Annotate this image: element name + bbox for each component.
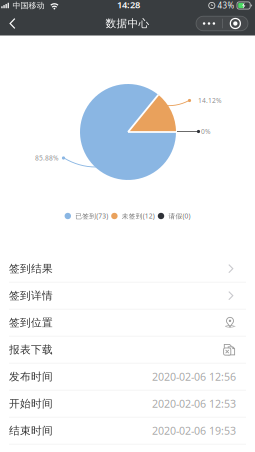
button[interactable]: 发布时间 [0, 363, 255, 390]
staticText: 2020-02-06 19:53 [152, 424, 236, 438]
staticText: 已签到(73) [75, 212, 108, 220]
staticText: 43% [218, 0, 235, 11]
button[interactable]: 开始时间 [0, 390, 255, 417]
staticText: 结束时间 [9, 424, 53, 437]
staticText: 14.12% [198, 96, 222, 105]
staticText: 签到位置 [9, 316, 53, 329]
staticText: 14:28 [117, 0, 140, 11]
staticText: 2020-02-06 12:53 [152, 397, 236, 411]
button[interactable]: 报表下载 [0, 336, 255, 363]
button[interactable]: 结束时间 [0, 417, 255, 444]
staticText: 报表下载 [9, 343, 53, 356]
button[interactable]: 签到结果 [0, 255, 255, 282]
staticText: 中国移动 [12, 1, 44, 10]
staticText: 发布时间 [9, 370, 53, 383]
button[interactable]: 签到位置 [0, 309, 255, 336]
staticText: 签到结果 [9, 262, 53, 275]
staticText: 数据中心 [105, 17, 149, 30]
staticText: 0% [201, 127, 211, 136]
staticText: 开始时间 [9, 397, 53, 410]
staticText: 未签到(12) [122, 212, 155, 220]
button[interactable]: Back [0, 14, 25, 33]
staticText: 85.88% [35, 154, 59, 162]
staticText: 签到详情 [9, 289, 53, 302]
staticText: 请假(0) [168, 212, 190, 220]
button[interactable]: 签到详情 [0, 282, 255, 309]
staticText: 2020-02-06 12:56 [152, 370, 236, 384]
button[interactable]: More options [196, 16, 248, 31]
